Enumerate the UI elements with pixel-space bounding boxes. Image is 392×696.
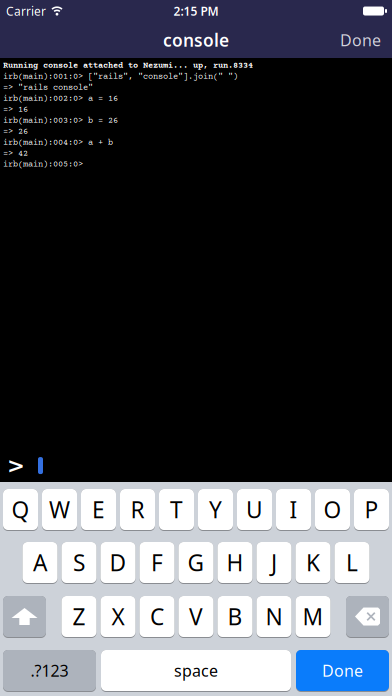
staticText: => 16 <box>3 105 28 115</box>
staticText: A <box>33 547 47 577</box>
staticText: G <box>187 547 204 577</box>
button[interactable]: V <box>178 596 213 638</box>
staticText: D <box>109 547 126 577</box>
staticText: P <box>364 494 378 524</box>
staticText: Q <box>11 494 29 524</box>
staticText: Carrier <box>6 3 46 19</box>
button[interactable]: A <box>22 542 57 584</box>
staticText: .?123 <box>30 660 68 681</box>
button[interactable]: C <box>139 596 174 638</box>
staticText: irb(main):002:0> a = 16 <box>3 94 118 104</box>
staticText: V <box>189 601 203 631</box>
staticText: irb(main):004:0> a + b <box>3 138 113 148</box>
button[interactable]: Q <box>3 489 38 531</box>
button[interactable]: Z <box>61 596 96 638</box>
staticText: M <box>302 601 323 631</box>
staticText: 2:15 PM <box>173 3 218 19</box>
staticText: L <box>346 547 358 577</box>
button[interactable]: E <box>81 489 116 531</box>
staticText: => 26 <box>3 127 28 137</box>
staticText: O <box>323 494 341 524</box>
button[interactable]: Done <box>296 650 389 692</box>
staticText: S <box>73 547 85 577</box>
staticText: U <box>246 494 263 524</box>
button[interactable]: R <box>120 489 155 531</box>
button[interactable]: Y <box>198 489 233 531</box>
button[interactable]: M <box>295 596 330 638</box>
button[interactable]: space <box>101 650 291 692</box>
button[interactable]: U <box>237 489 272 531</box>
staticText: B <box>227 601 242 631</box>
button[interactable]: T <box>159 489 194 531</box>
button[interactable]: B <box>217 596 252 638</box>
staticText: => "rails console" <box>3 83 93 93</box>
staticText: X <box>111 601 124 631</box>
staticText: I <box>289 494 297 524</box>
button[interactable]: X <box>100 596 135 638</box>
staticText: irb(main):003:0> b = 26 <box>3 116 118 126</box>
staticText: C <box>150 601 164 631</box>
staticText: H <box>226 547 243 577</box>
button[interactable]: N <box>256 596 291 638</box>
staticText: Z <box>72 601 85 631</box>
button[interactable]: P <box>354 489 389 531</box>
button[interactable]: Shift <box>3 596 46 638</box>
staticText: Running console attached to Nezumi... up… <box>3 61 253 71</box>
button[interactable]: I <box>276 489 311 531</box>
button[interactable]: G <box>178 542 213 584</box>
button[interactable]: Delete <box>346 596 389 638</box>
button[interactable]: L <box>334 542 369 584</box>
staticText: K <box>306 547 320 577</box>
staticText: T <box>170 494 183 524</box>
staticText: => 42 <box>3 149 28 159</box>
button[interactable]: O <box>315 489 350 531</box>
button[interactable]: F <box>139 542 174 584</box>
staticText: space <box>174 660 218 681</box>
button[interactable]: S <box>61 542 96 584</box>
staticText: N <box>265 601 282 631</box>
staticText: F <box>151 547 163 577</box>
staticText: > <box>7 453 25 478</box>
staticText: Done <box>340 29 381 51</box>
staticText: J <box>271 547 277 577</box>
button[interactable]: K <box>295 542 330 584</box>
staticText: irb(main):001:0> ["rails", "console"].jo… <box>3 72 238 82</box>
staticText: W <box>49 494 70 524</box>
button[interactable]: .?123 <box>3 650 96 692</box>
button[interactable]: W <box>42 489 77 531</box>
button[interactable]: J <box>256 542 291 584</box>
button[interactable]: D <box>100 542 135 584</box>
staticText: E <box>92 494 105 524</box>
staticText: console <box>163 28 229 51</box>
button[interactable]: Done <box>340 29 381 51</box>
staticText: R <box>130 494 144 524</box>
staticText: Y <box>209 494 222 524</box>
button[interactable]: H <box>217 542 252 584</box>
staticText: irb(main):005:0> <box>3 160 83 170</box>
staticText: Done <box>322 660 363 681</box>
